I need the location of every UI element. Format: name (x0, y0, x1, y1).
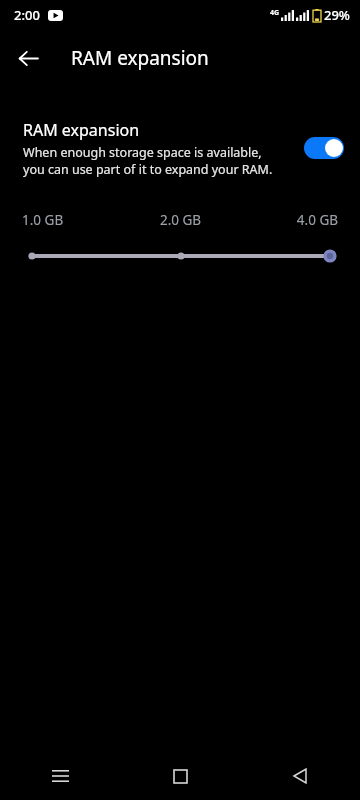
button[interactable]: RAM size slider, 4.0 GB (0, 243, 360, 269)
staticText: 2.0 GB (128, 211, 233, 229)
staticText: 4.0 GB (233, 211, 338, 229)
button[interactable]: RAM expansion toggle, on (302, 133, 346, 163)
button[interactable]: RAM expansion (0, 119, 360, 177)
staticText: 29% (324, 6, 350, 24)
staticText: 2:00 (14, 6, 40, 24)
staticText: RAM expansion (71, 45, 209, 71)
staticText: When enough storage space is available, … (23, 144, 283, 177)
button[interactable]: Back (8, 38, 48, 78)
staticText: RAM expansion (23, 119, 140, 141)
button[interactable]: Recents (0, 752, 120, 800)
staticText: 4G (270, 8, 280, 18)
staticText: 1.0 GB (22, 211, 128, 229)
button[interactable]: Home (120, 752, 240, 800)
button[interactable]: Back (240, 752, 360, 800)
